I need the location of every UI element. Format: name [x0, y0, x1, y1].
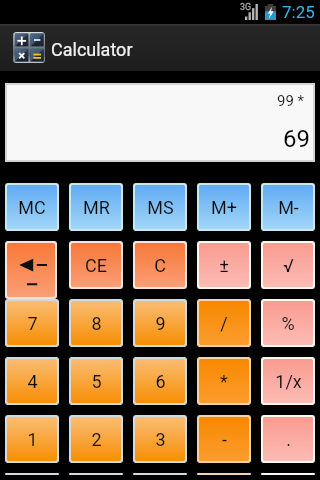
button[interactable]: Calculator icon: [0, 24, 320, 71]
staticText: M-: [278, 197, 299, 218]
staticText: ±: [219, 255, 229, 276]
button[interactable]: ±: [199, 243, 249, 287]
staticText: 9: [155, 313, 166, 334]
staticText: /: [220, 313, 228, 334]
button[interactable]: MC: [7, 185, 57, 229]
staticText: 1: [27, 429, 38, 450]
button[interactable]: M+: [199, 185, 249, 229]
staticText: -: [222, 429, 227, 450]
button[interactable]: *: [199, 359, 249, 403]
button[interactable]: 1/x: [263, 359, 313, 403]
button[interactable]: 1: [7, 417, 57, 461]
button[interactable]: 99 *: [7, 85, 313, 160]
button[interactable]: 6: [135, 359, 185, 403]
staticText: MR: [83, 197, 110, 218]
staticText: 99 *: [277, 92, 305, 110]
button[interactable]: Backspace: [7, 243, 55, 297]
staticText: Calculator: [51, 39, 133, 60]
staticText: MS: [147, 197, 174, 218]
staticText: 5: [91, 371, 102, 392]
staticText: 8: [91, 313, 102, 334]
staticText: C: [154, 255, 166, 276]
button[interactable]: C: [135, 243, 185, 287]
button[interactable]: %: [263, 301, 313, 345]
button[interactable]: 2: [71, 417, 121, 461]
button[interactable]: 4: [7, 359, 57, 403]
staticText: MC: [18, 197, 46, 218]
button[interactable]: MS: [135, 185, 185, 229]
staticText: M+: [211, 197, 237, 218]
staticText: .: [286, 429, 291, 450]
button[interactable]: -: [199, 417, 249, 461]
staticText: 2: [91, 429, 102, 450]
staticText: 6: [155, 371, 166, 392]
button[interactable]: 8: [71, 301, 121, 345]
button[interactable]: 5: [71, 359, 121, 403]
staticText: *: [220, 371, 228, 392]
button[interactable]: .: [263, 417, 313, 461]
button[interactable]: CE: [71, 243, 121, 287]
staticText: %: [281, 313, 295, 334]
staticText: 7:25: [282, 2, 315, 22]
staticText: CE: [85, 255, 107, 276]
button[interactable]: M-: [263, 185, 313, 229]
staticText: 3: [155, 429, 166, 450]
button[interactable]: 9: [135, 301, 185, 345]
staticText: 69: [283, 125, 310, 153]
staticText: 4: [27, 371, 38, 392]
staticText: 7: [27, 313, 38, 334]
staticText: 3G: [240, 2, 252, 13]
other: Calculator icon: [13, 32, 45, 63]
button[interactable]: /: [199, 301, 249, 345]
button[interactable]: 7: [7, 301, 57, 345]
button[interactable]: 3: [135, 417, 185, 461]
button[interactable]: √: [263, 243, 313, 287]
staticText: 1/x: [275, 371, 302, 392]
button[interactable]: MR: [71, 185, 121, 229]
staticText: √: [283, 255, 294, 276]
